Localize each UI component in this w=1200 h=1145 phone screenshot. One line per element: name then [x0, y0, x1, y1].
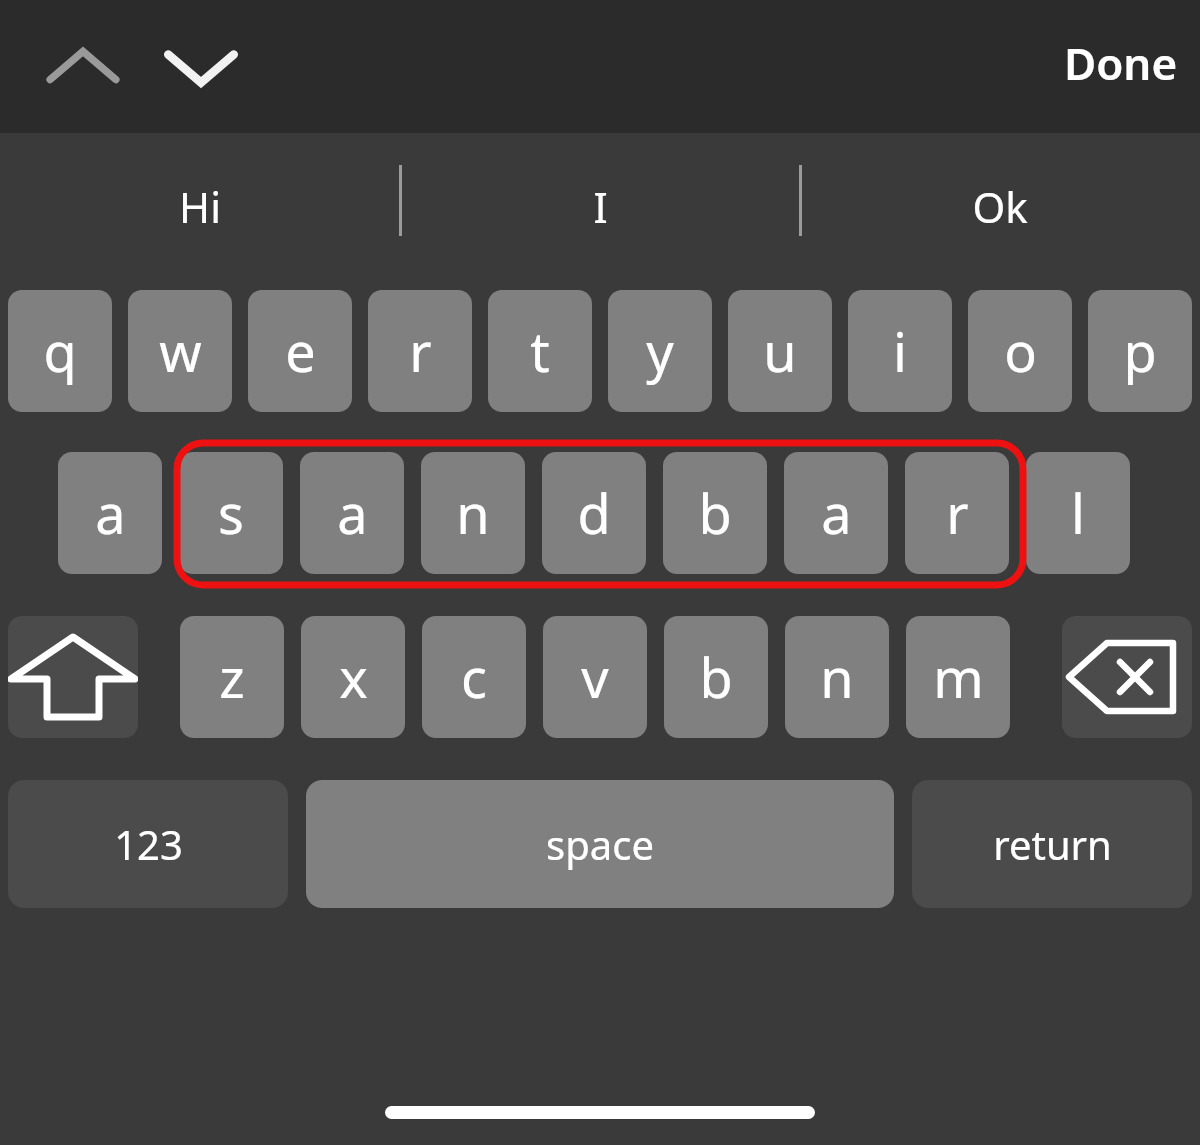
- button[interactable]: return: [912, 780, 1192, 908]
- staticText: 123: [114, 817, 183, 871]
- button[interactable]: o: [968, 290, 1072, 412]
- button[interactable]: b: [664, 616, 768, 738]
- button[interactable]: 123: [8, 780, 288, 908]
- staticText: s: [218, 476, 244, 550]
- staticText: i: [893, 314, 907, 388]
- button[interactable]: b: [663, 452, 767, 574]
- button[interactable]: v: [543, 616, 647, 738]
- button[interactable]: t: [488, 290, 592, 412]
- staticText: m: [933, 640, 984, 714]
- button[interactable]: c: [422, 616, 526, 738]
- button[interactable]: y: [608, 290, 712, 412]
- button[interactable]: x: [301, 616, 405, 738]
- button[interactable]: u: [728, 290, 832, 412]
- button[interactable]: I: [400, 133, 800, 280]
- staticText: c: [461, 640, 487, 714]
- staticText: a: [337, 476, 368, 550]
- staticText: a: [95, 476, 126, 550]
- staticText: space: [546, 817, 654, 871]
- button[interactable]: n: [421, 452, 525, 574]
- staticText: u: [763, 314, 797, 388]
- button[interactable]: r: [905, 452, 1009, 574]
- button[interactable]: i: [848, 290, 952, 412]
- button[interactable]: Shift: [8, 616, 138, 738]
- staticText: p: [1123, 314, 1157, 388]
- button[interactable]: r: [368, 290, 472, 412]
- staticText: b: [698, 476, 732, 550]
- staticText: I: [593, 178, 608, 235]
- staticText: t: [530, 314, 550, 388]
- button[interactable]: d: [542, 452, 646, 574]
- button[interactable]: z: [180, 616, 284, 738]
- button[interactable]: space: [306, 780, 894, 908]
- button[interactable]: q: [8, 290, 112, 412]
- staticText: d: [577, 476, 611, 550]
- staticText: a: [821, 476, 852, 550]
- staticText: z: [219, 640, 245, 714]
- button[interactable]: e: [248, 290, 352, 412]
- button[interactable]: n: [785, 616, 889, 738]
- button[interactable]: Ok: [800, 133, 1200, 280]
- button[interactable]: a: [300, 452, 404, 574]
- staticText: y: [646, 314, 674, 388]
- staticText: l: [1071, 476, 1085, 550]
- staticText: n: [456, 476, 490, 550]
- staticText: r: [946, 476, 969, 550]
- staticText: x: [339, 640, 368, 714]
- staticText: r: [409, 314, 432, 388]
- staticText: v: [581, 640, 609, 714]
- staticText: w: [159, 314, 202, 388]
- button[interactable]: Hi: [0, 133, 400, 280]
- staticText: Done: [1064, 33, 1178, 93]
- staticText: return: [993, 817, 1112, 871]
- button[interactable]: a: [58, 452, 162, 574]
- staticText: o: [1004, 314, 1037, 388]
- button[interactable]: m: [906, 616, 1010, 738]
- button[interactable]: l: [1026, 452, 1130, 574]
- staticText: e: [285, 314, 316, 388]
- staticText: b: [699, 640, 733, 714]
- staticText: n: [820, 640, 854, 714]
- button[interactable]: w: [128, 290, 232, 412]
- button[interactable]: p: [1088, 290, 1192, 412]
- button[interactable]: s: [179, 452, 283, 574]
- button[interactable]: a: [784, 452, 888, 574]
- button[interactable]: Backspace: [1062, 616, 1192, 738]
- button[interactable]: Next field: [160, 28, 242, 106]
- button[interactable]: Done: [1064, 37, 1178, 97]
- staticText: Hi: [179, 178, 221, 235]
- button[interactable]: Previous field: [42, 28, 124, 106]
- staticText: q: [43, 314, 77, 388]
- staticText: Ok: [972, 178, 1028, 235]
